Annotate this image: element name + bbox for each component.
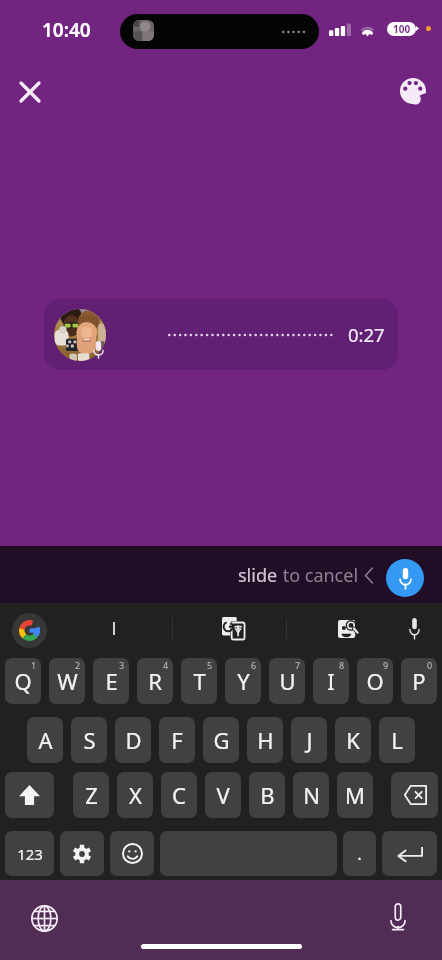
staticText: 4 bbox=[163, 659, 169, 671]
staticText: 123 bbox=[17, 844, 43, 864]
button[interactable]: Q bbox=[5, 658, 41, 704]
button[interactable]: Settings bbox=[60, 831, 104, 876]
button[interactable]: F bbox=[159, 717, 195, 763]
staticText: N bbox=[303, 780, 320, 810]
button[interactable]: X bbox=[117, 772, 153, 818]
staticText: T bbox=[193, 666, 206, 696]
button[interactable]: . bbox=[343, 831, 376, 876]
button[interactable]: K bbox=[335, 717, 371, 763]
button[interactable]: V bbox=[205, 772, 241, 818]
staticText: C bbox=[172, 780, 186, 810]
staticText: . bbox=[357, 842, 362, 865]
staticText: S bbox=[83, 725, 96, 755]
staticText: to cancel bbox=[278, 563, 359, 588]
button[interactable]: I bbox=[313, 658, 349, 704]
staticText: 0:27 bbox=[348, 322, 385, 347]
staticText: 2 bbox=[75, 659, 81, 671]
button[interactable]: Z bbox=[73, 772, 109, 818]
button[interactable]: A bbox=[27, 717, 63, 763]
staticText: 6 bbox=[251, 659, 257, 671]
staticText: G bbox=[213, 725, 230, 755]
button[interactable]: 0:27 bbox=[44, 299, 398, 370]
button[interactable]: E bbox=[93, 658, 129, 704]
staticText: D bbox=[125, 725, 142, 755]
staticText: 1 bbox=[31, 659, 37, 671]
button[interactable]: H bbox=[247, 717, 283, 763]
staticText: U bbox=[279, 666, 296, 696]
staticText: M bbox=[345, 780, 365, 810]
button[interactable]: Theme bbox=[390, 68, 435, 113]
staticText: 10:40 bbox=[42, 17, 91, 43]
staticText: B bbox=[260, 780, 275, 810]
staticText: W bbox=[57, 666, 78, 696]
button[interactable]: L bbox=[379, 717, 415, 763]
button[interactable]: Voice input bbox=[398, 612, 430, 644]
staticText: 100 bbox=[393, 22, 411, 36]
staticText: Q bbox=[14, 666, 32, 696]
staticText: 9 bbox=[383, 659, 389, 671]
button[interactable]: O bbox=[357, 658, 393, 704]
button[interactable]: Translate bbox=[213, 613, 253, 644]
staticText: R bbox=[148, 666, 162, 696]
staticText: 8 bbox=[339, 659, 345, 671]
staticText: slide bbox=[238, 563, 278, 588]
staticText: 5 bbox=[207, 659, 213, 671]
button[interactable]: P bbox=[401, 658, 437, 704]
button[interactable]: B bbox=[249, 772, 285, 818]
button[interactable]: W bbox=[49, 658, 85, 704]
button[interactable]: C bbox=[161, 772, 197, 818]
button[interactable]: Emoji bbox=[110, 831, 154, 876]
button[interactable]: Microphone bbox=[376, 895, 420, 939]
staticText: 7 bbox=[295, 659, 301, 671]
button[interactable]: Backspace bbox=[391, 772, 438, 818]
button[interactable]: Enter bbox=[382, 831, 437, 876]
staticText: X bbox=[129, 780, 142, 810]
staticText: H bbox=[257, 725, 274, 755]
staticText: I bbox=[327, 666, 335, 696]
staticText: 0 bbox=[427, 659, 433, 671]
staticText: Z bbox=[85, 780, 98, 810]
staticText: A bbox=[38, 725, 53, 755]
button[interactable]: U bbox=[269, 658, 305, 704]
staticText: K bbox=[346, 725, 360, 755]
button[interactable]: Search contact bbox=[328, 613, 368, 644]
staticText: V bbox=[216, 780, 230, 810]
button[interactable]: Recording bbox=[386, 559, 424, 597]
staticText: E bbox=[105, 666, 118, 696]
button[interactable]: Google bbox=[12, 613, 47, 648]
button[interactable]: M bbox=[337, 772, 373, 818]
button[interactable]: S bbox=[71, 717, 107, 763]
button[interactable]: T bbox=[181, 658, 217, 704]
button[interactable]: G bbox=[203, 717, 239, 763]
button[interactable]: N bbox=[293, 772, 329, 818]
button[interactable]: Language bbox=[22, 896, 66, 940]
button[interactable]: Close bbox=[8, 69, 52, 114]
button[interactable]: Shift bbox=[5, 772, 54, 818]
button[interactable]: R bbox=[137, 658, 173, 704]
button[interactable]: Y bbox=[225, 658, 261, 704]
button[interactable]: 123 bbox=[5, 831, 54, 876]
staticText: P bbox=[412, 666, 426, 696]
staticText: O bbox=[366, 666, 384, 696]
staticText: Y bbox=[237, 666, 250, 696]
staticText: L bbox=[391, 725, 403, 755]
staticText: J bbox=[306, 725, 313, 755]
staticText: 3 bbox=[119, 659, 125, 671]
button[interactable]: D bbox=[115, 717, 151, 763]
button[interactable]: J bbox=[291, 717, 327, 763]
staticText: F bbox=[171, 725, 183, 755]
